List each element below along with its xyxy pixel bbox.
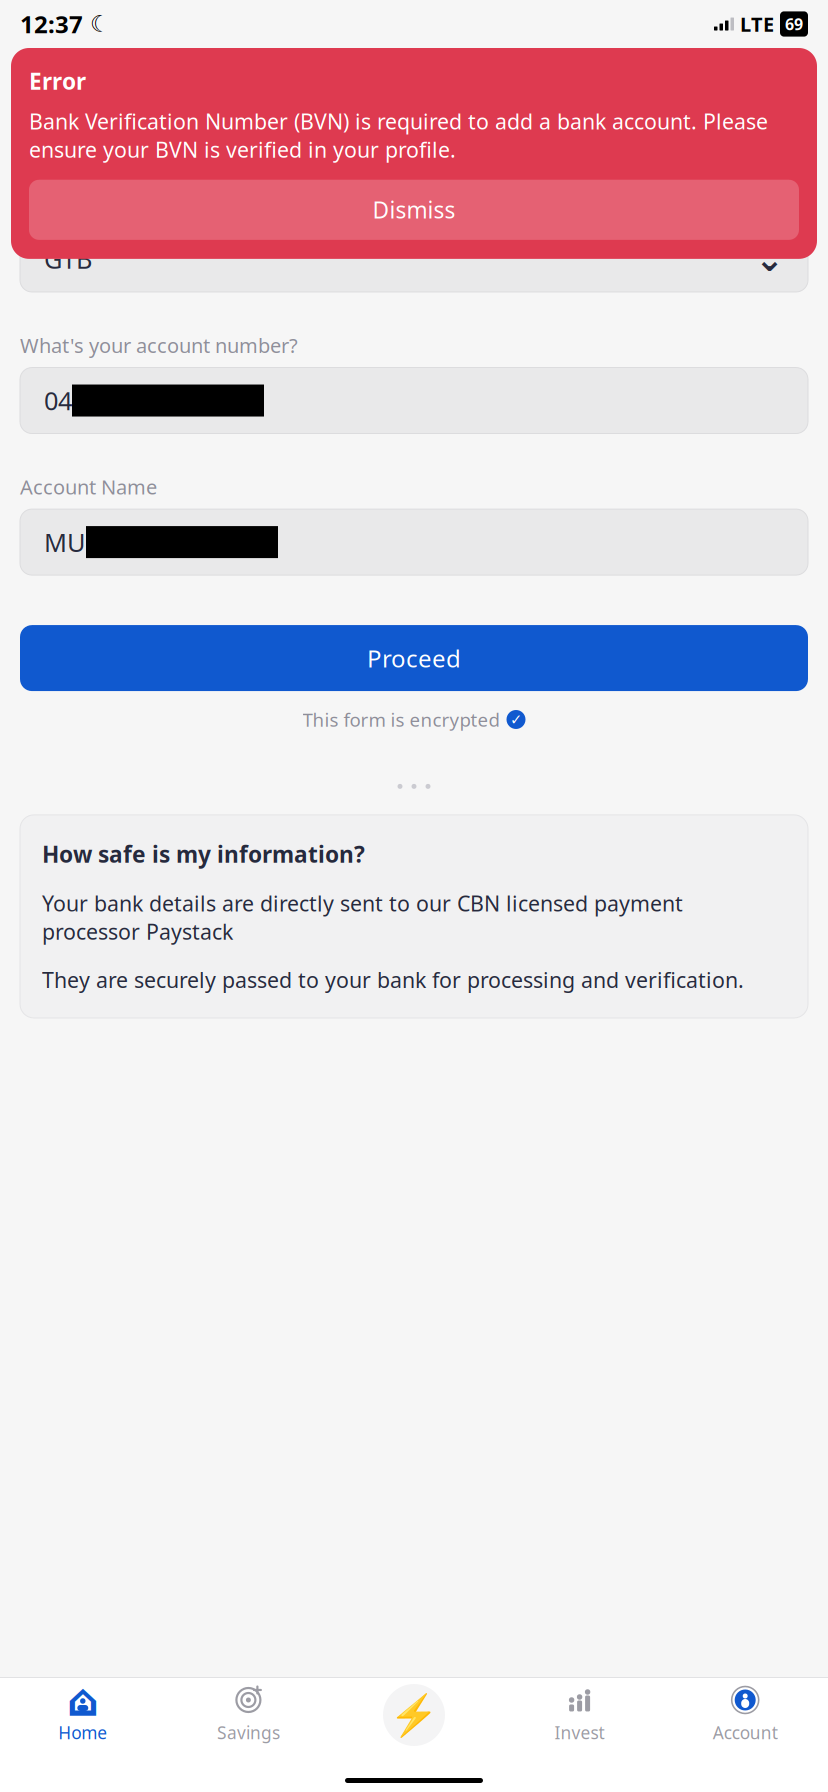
- staticText: 12:37: [20, 8, 83, 40]
- staticText: Proceed: [367, 642, 461, 674]
- staticText: They are securely passed to your bank fo…: [42, 966, 744, 994]
- staticText: 04: [44, 384, 72, 417]
- staticText: Invest: [555, 1721, 605, 1744]
- staticText: ☾: [90, 11, 110, 37]
- button[interactable]: Dismiss: [29, 180, 799, 240]
- staticText: ✓: [510, 711, 522, 728]
- button[interactable]: Savings: [166, 1678, 331, 1752]
- staticText: Your bank details are directly sent to o…: [42, 889, 683, 946]
- staticText: ⌄: [755, 239, 784, 279]
- staticText: ⚡: [389, 1692, 439, 1738]
- button[interactable]: ⌂: [0, 1678, 166, 1752]
- staticText: Savings: [217, 1721, 280, 1744]
- button[interactable]: Quick action: [331, 1684, 497, 1746]
- staticText: Error: [29, 66, 86, 96]
- staticText: MU: [44, 525, 86, 559]
- button[interactable]: Proceed: [20, 625, 808, 691]
- staticText: Account Name: [20, 473, 157, 500]
- staticText: Home: [58, 1721, 107, 1744]
- staticText: Bank Verification Number (BVN) is requir…: [29, 107, 768, 164]
- button[interactable]: Invest: [497, 1678, 662, 1752]
- staticText: This form is encrypted: [302, 707, 499, 732]
- staticText: ⌂: [67, 1674, 99, 1726]
- button[interactable]: Account: [662, 1678, 828, 1752]
- staticText: Select your bank (more banks coming soon…: [20, 191, 427, 218]
- staticText: What's your account number?: [20, 332, 298, 359]
- staticText: GTB: [44, 242, 92, 276]
- staticText: Dismiss: [372, 195, 455, 225]
- staticText: How safe is my information?: [42, 839, 365, 869]
- staticText: Account: [713, 1721, 778, 1744]
- staticText: LTE: [740, 11, 774, 37]
- staticText: 69: [785, 13, 803, 35]
- staticText: Securely Link Your Bank 🏦: [20, 132, 379, 167]
- button[interactable]: GTB: [20, 226, 808, 292]
